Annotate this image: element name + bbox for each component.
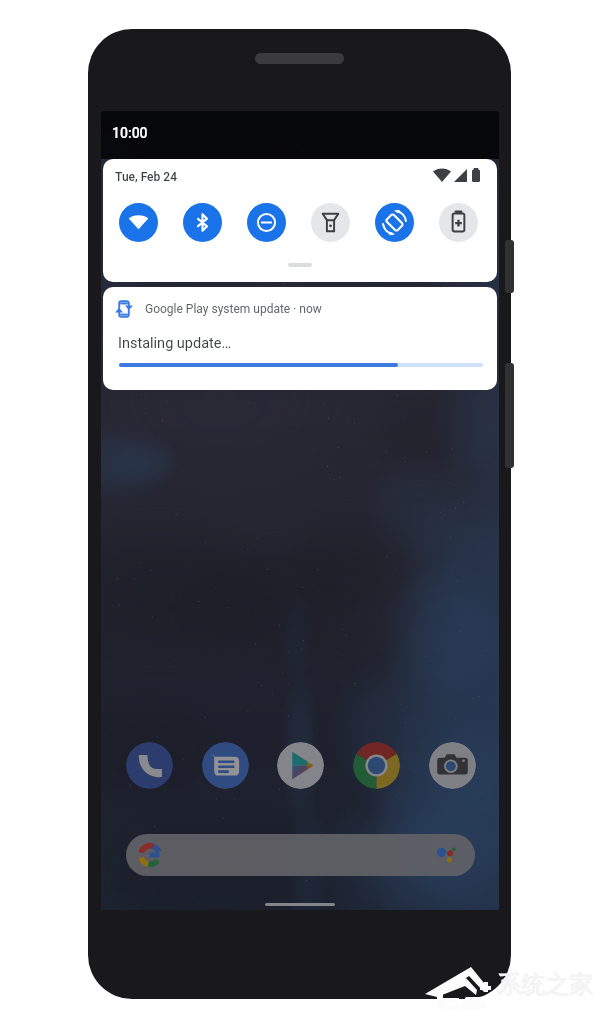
staticText: Instaling update… (118, 335, 232, 352)
button[interactable]: Play Store (277, 742, 324, 789)
staticText: 10:00 (112, 125, 148, 141)
button[interactable]: Battery saver (439, 203, 478, 242)
button[interactable]: Search (126, 834, 475, 876)
button[interactable]: Messages (202, 742, 249, 789)
button[interactable]: Bluetooth (183, 203, 222, 242)
staticText: Tue, Feb 24 (115, 170, 177, 184)
staticText: Google Play system update · now (145, 302, 322, 316)
button[interactable]: Google Play system update · now (103, 287, 497, 390)
button[interactable]: Flashlight (311, 203, 350, 242)
button[interactable]: Auto-rotate (375, 203, 414, 242)
button[interactable]: Phone (126, 742, 173, 789)
button[interactable]: Chrome (353, 742, 400, 789)
staticText: 系统之家 (497, 970, 593, 1000)
button[interactable]: Camera (429, 742, 476, 789)
button[interactable]: Do not disturb (247, 203, 286, 242)
button[interactable]: Wi-Fi (119, 203, 158, 242)
